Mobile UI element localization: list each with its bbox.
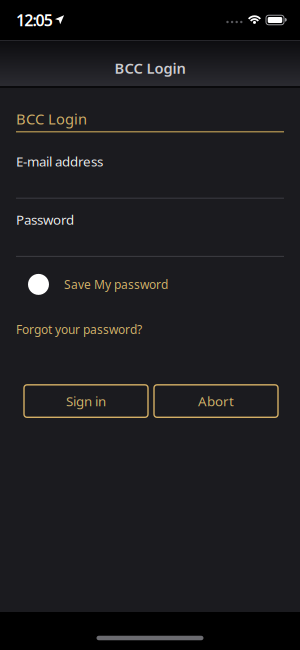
staticText: E-mail address xyxy=(16,152,103,170)
staticText: 12:05 xyxy=(16,9,53,31)
button[interactable]: Forgot your password? xyxy=(16,321,142,337)
staticText: Save My password xyxy=(64,276,168,292)
button[interactable]: Save My password xyxy=(16,274,168,295)
staticText: Abort xyxy=(198,392,234,410)
staticText: BCC Login xyxy=(114,58,185,78)
button[interactable]: Sign in xyxy=(24,385,148,417)
staticText: Forgot your password? xyxy=(16,321,142,337)
button[interactable]: Abort xyxy=(154,385,278,417)
staticText: Sign in xyxy=(66,392,106,410)
staticText: BCC Login xyxy=(16,109,87,128)
staticText: Password xyxy=(16,211,74,228)
